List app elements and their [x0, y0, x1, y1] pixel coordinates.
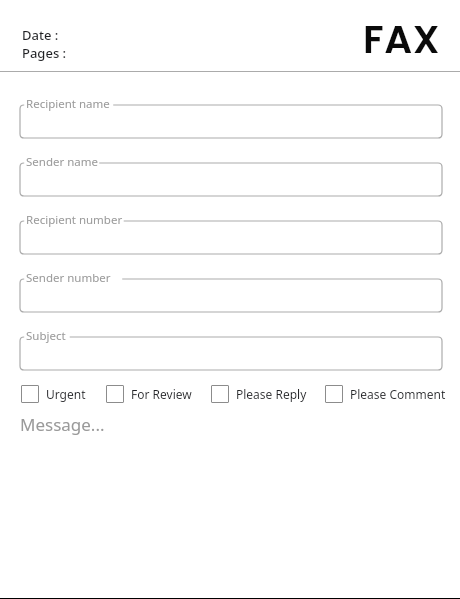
- button[interactable]: Recipient name: [20, 105, 442, 138]
- button[interactable]: Recipient number: [20, 221, 442, 254]
- button[interactable]: Please Reply: [211, 385, 307, 403]
- staticText: Sender number: [26, 270, 111, 286]
- staticText: Subject: [26, 328, 66, 344]
- button[interactable]: Sender number: [20, 279, 442, 312]
- button[interactable]: Sender name: [20, 163, 442, 196]
- button[interactable]: Message...: [20, 413, 442, 563]
- staticText: Date :: [22, 26, 59, 44]
- staticText: Please Reply: [236, 386, 307, 402]
- staticText: Pages :: [22, 44, 67, 62]
- staticText: For Review: [131, 386, 192, 402]
- staticText: Recipient name: [26, 96, 110, 112]
- staticText: Message...: [20, 413, 105, 436]
- button[interactable]: Please Comment: [325, 385, 446, 403]
- button[interactable]: Subject: [20, 337, 442, 370]
- staticText: Please Comment: [350, 386, 446, 402]
- button[interactable]: Urgent: [21, 385, 86, 403]
- button[interactable]: For Review: [106, 385, 192, 403]
- staticText: Recipient number: [26, 212, 123, 228]
- staticText: Urgent: [46, 386, 86, 402]
- staticText: FAX: [363, 12, 441, 67]
- staticText: Sender name: [26, 154, 99, 170]
